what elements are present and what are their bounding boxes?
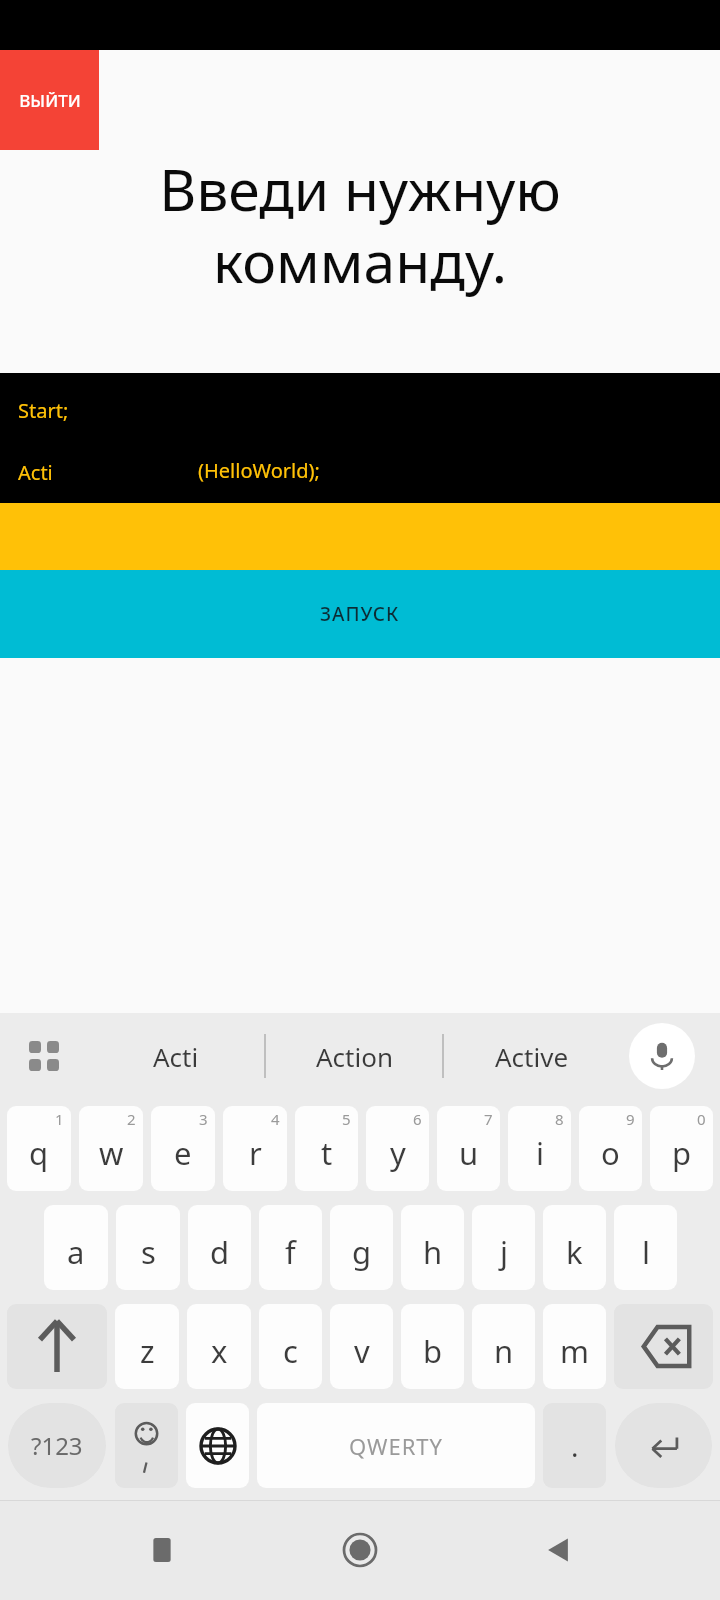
staticText: 5 [342, 1109, 351, 1129]
staticText: j [500, 1231, 508, 1273]
staticText: 0 [697, 1109, 706, 1129]
button[interactable]: i [508, 1106, 571, 1191]
button[interactable]: z [115, 1304, 179, 1389]
staticText: 4 [271, 1109, 280, 1129]
button[interactable]: Backspace [614, 1304, 713, 1389]
button[interactable]: x [187, 1304, 251, 1389]
button[interactable]: . [543, 1403, 606, 1488]
staticText: k [566, 1231, 583, 1273]
button[interactable]: c [259, 1304, 322, 1389]
staticText: . [571, 1427, 579, 1465]
button[interactable]: Emoji and comma [115, 1403, 178, 1488]
button[interactable]: s [116, 1205, 180, 1290]
staticText: a [67, 1231, 85, 1273]
button[interactable]: Acti [88, 1013, 264, 1099]
staticText: q [29, 1132, 49, 1174]
button[interactable]: p [650, 1106, 713, 1191]
button[interactable]: j [472, 1205, 535, 1290]
button[interactable]: w [79, 1106, 143, 1191]
button[interactable]: Active [444, 1013, 620, 1099]
staticText: e [174, 1132, 192, 1174]
button[interactable]: n [472, 1304, 535, 1389]
button[interactable]: b [401, 1304, 464, 1389]
button[interactable]: u [437, 1106, 500, 1191]
staticText: l [642, 1231, 650, 1273]
button[interactable]: r [223, 1106, 287, 1191]
button[interactable]: ?123 [8, 1403, 106, 1488]
button[interactable]: v [330, 1304, 393, 1389]
button[interactable]: Home [324, 1514, 396, 1586]
button[interactable]: h [401, 1205, 464, 1290]
button[interactable]: Keyboard options [14, 1013, 74, 1099]
staticText: z [140, 1330, 155, 1372]
button[interactable]: o [579, 1106, 642, 1191]
staticText: r [249, 1132, 262, 1174]
staticText: 3 [199, 1109, 208, 1129]
staticText: d [210, 1231, 230, 1273]
button[interactable]: l [614, 1205, 677, 1290]
button[interactable]: k [543, 1205, 606, 1290]
button[interactable]: q [7, 1106, 71, 1191]
button[interactable]: Back [522, 1514, 594, 1586]
staticText: m [560, 1330, 589, 1372]
staticText: b [423, 1330, 443, 1372]
staticText: w [99, 1132, 124, 1174]
staticText: Введи нужную комманду. [20, 150, 700, 299]
staticText: Start; [18, 397, 69, 424]
staticText: 7 [484, 1109, 493, 1129]
staticText: v [354, 1330, 370, 1372]
button[interactable]: f [259, 1205, 322, 1290]
button[interactable]: ВЫЙТИ [0, 50, 99, 150]
staticText: ?123 [31, 1429, 83, 1462]
staticText: h [423, 1231, 443, 1273]
staticText: (HelloWorld); [198, 457, 320, 484]
staticText: ЗАПУСК [320, 601, 400, 627]
button[interactable]: g [330, 1205, 393, 1290]
staticText: 9 [626, 1109, 635, 1129]
staticText: t [321, 1132, 333, 1174]
button[interactable]: Action [266, 1013, 442, 1099]
staticText: Acti [153, 1039, 199, 1074]
staticText: Action [316, 1039, 393, 1074]
staticText: s [141, 1231, 156, 1273]
staticText: 2 [127, 1109, 136, 1129]
staticText: x [211, 1330, 228, 1372]
button[interactable]: d [188, 1205, 251, 1290]
button[interactable]: a [44, 1205, 108, 1290]
button[interactable]: t [295, 1106, 358, 1191]
staticText: f [285, 1231, 296, 1273]
staticText: QWERTY [349, 1431, 444, 1461]
staticText: y [390, 1132, 406, 1174]
staticText: Active [495, 1039, 569, 1074]
button[interactable]: Change language [186, 1403, 249, 1488]
button[interactable]: Enter [615, 1403, 712, 1488]
staticText: Acti [18, 459, 53, 486]
staticText: o [601, 1132, 620, 1174]
button[interactable]: QWERTY [257, 1403, 535, 1488]
staticText: n [494, 1330, 514, 1372]
button[interactable]: ЗАПУСК [0, 570, 720, 658]
staticText: p [672, 1132, 692, 1174]
staticText: ВЫЙТИ [19, 89, 81, 112]
staticText: u [459, 1132, 479, 1174]
staticText: g [352, 1231, 372, 1273]
button[interactable]: y [366, 1106, 429, 1191]
button[interactable]: Recents [126, 1514, 198, 1586]
staticText: i [536, 1132, 544, 1174]
staticText: 8 [555, 1109, 564, 1129]
button[interactable]: Shift [7, 1304, 107, 1389]
staticText: c [283, 1330, 298, 1372]
staticText: 1 [55, 1109, 64, 1129]
button[interactable]: m [543, 1304, 606, 1389]
staticText: 6 [413, 1109, 422, 1129]
button[interactable]: e [151, 1106, 215, 1191]
button[interactable]: Voice input [629, 1023, 695, 1089]
